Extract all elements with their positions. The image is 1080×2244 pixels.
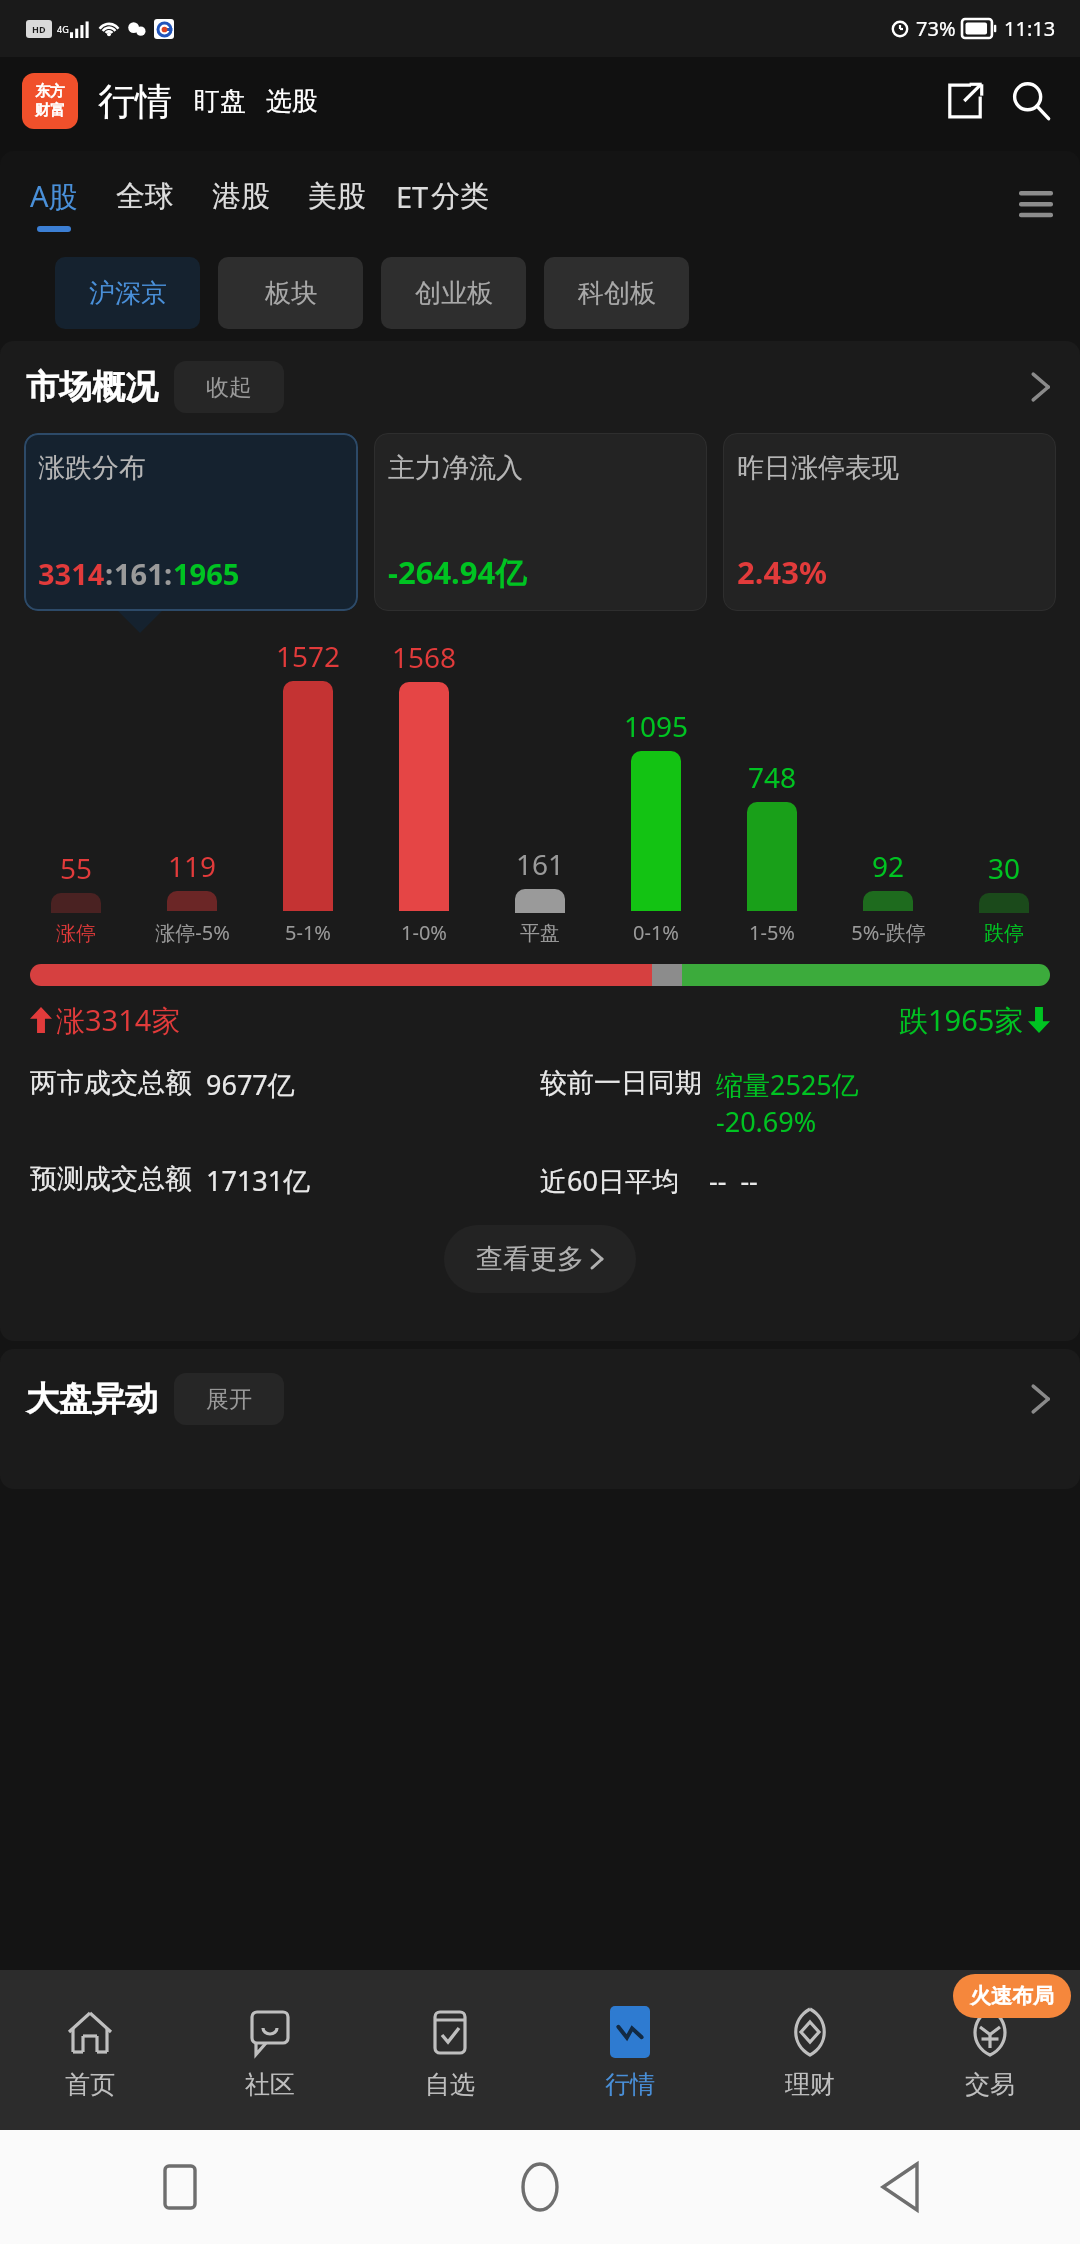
button[interactable]: 行情 xyxy=(98,78,172,125)
staticText: -- -- xyxy=(709,1162,758,1199)
staticText: 大盘异动 xyxy=(26,1378,158,1420)
staticText: 自选 xyxy=(425,2069,475,2100)
staticText: 预测成交总额 xyxy=(30,1162,192,1196)
button[interactable]: East Money logo xyxy=(22,73,78,129)
staticText: 1572 xyxy=(276,637,341,675)
staticText: 1095 xyxy=(624,707,689,745)
staticText: ET xyxy=(396,177,429,216)
staticText: 跌1965家 xyxy=(899,1000,1024,1040)
staticText: 社区 xyxy=(245,2069,295,2100)
button[interactable]: Home xyxy=(510,2157,570,2217)
staticText: 73% xyxy=(916,15,956,42)
staticText: 缩量2525亿 xyxy=(716,1066,859,1103)
staticText: 全球 xyxy=(116,178,174,215)
staticText: 沪深京 xyxy=(89,277,167,310)
button[interactable]: 社区 xyxy=(180,1970,360,2130)
staticText: HD xyxy=(32,23,46,35)
button[interactable]: 展开 xyxy=(174,1373,284,1425)
staticText: 展开 xyxy=(206,1385,252,1414)
staticText: 港股 xyxy=(212,178,270,215)
button[interactable]: 全球 xyxy=(116,151,174,257)
staticText: : xyxy=(164,554,173,593)
button[interactable]: A股 xyxy=(30,151,78,257)
button[interactable]: 选股 xyxy=(266,85,318,118)
button[interactable]: 沪深京 xyxy=(55,257,200,329)
staticText: -264.94亿 xyxy=(388,551,527,593)
staticText: 较前一日同期 xyxy=(540,1066,702,1100)
staticText: 理财 xyxy=(785,2069,835,2100)
staticText: 收起 xyxy=(206,373,252,402)
staticText: 涨3314家 xyxy=(56,1000,181,1040)
button[interactable]: 大盘异动 xyxy=(0,1349,1080,1449)
staticText: 涨停 xyxy=(56,921,96,946)
staticText: 东方 xyxy=(35,82,65,101)
staticText: 涨停-5% xyxy=(155,919,230,946)
button[interactable]: ET xyxy=(396,151,429,257)
staticText: 11:13 xyxy=(1004,15,1056,42)
button[interactable]: 涨跌分布 xyxy=(24,433,358,611)
button[interactable]: 收起 xyxy=(174,361,284,413)
staticText: 17131亿 xyxy=(206,1162,311,1199)
staticText: 行情 xyxy=(605,2069,655,2100)
staticText: 161 xyxy=(516,845,565,883)
staticText: 1965 xyxy=(173,554,240,593)
staticText: 板块 xyxy=(265,277,317,310)
staticText: 财富 xyxy=(35,101,65,120)
staticText: 4G xyxy=(57,23,69,35)
staticText: 跌停 xyxy=(984,921,1024,946)
staticText: 交易 xyxy=(965,2069,1015,2100)
staticText: 5-1% xyxy=(285,919,331,946)
button[interactable]: 交易 xyxy=(900,1970,1080,2130)
staticText: 主力净流入 xyxy=(388,451,523,485)
staticText: 5%-跌停 xyxy=(851,919,926,946)
button[interactable]: Share xyxy=(940,76,990,126)
button[interactable]: 板块 xyxy=(218,257,363,329)
staticText: 火速布局 xyxy=(970,1983,1054,2009)
staticText: A股 xyxy=(30,176,78,216)
staticText: 1-0% xyxy=(401,919,447,946)
staticText: 748 xyxy=(748,758,797,796)
button[interactable]: 分类 xyxy=(431,151,489,257)
staticText: 92 xyxy=(872,847,905,885)
button[interactable]: 盯盘 xyxy=(194,85,246,118)
staticText: 分类 xyxy=(431,178,489,215)
button[interactable]: Back xyxy=(870,2157,930,2217)
staticText: 30 xyxy=(988,849,1021,887)
staticText: 55 xyxy=(60,849,93,887)
staticText: 市场概况 xyxy=(26,366,158,408)
staticText: 119 xyxy=(168,847,217,885)
staticText: 0-1% xyxy=(633,919,679,946)
staticText: 首页 xyxy=(65,2069,115,2100)
button[interactable]: Menu xyxy=(1008,176,1064,232)
button[interactable]: 港股 xyxy=(212,151,270,257)
staticText: 美股 xyxy=(308,178,366,215)
staticText: 1-5% xyxy=(749,919,795,946)
staticText: 昨日涨停表现 xyxy=(737,451,899,485)
button[interactable]: 昨日涨停表现 xyxy=(723,433,1056,611)
button[interactable]: 行情 xyxy=(540,1970,720,2130)
button[interactable]: 查看更多 xyxy=(444,1225,636,1293)
staticText: 两市成交总额 xyxy=(30,1066,192,1100)
staticText: 选股 xyxy=(266,85,318,118)
staticText: 平盘 xyxy=(520,921,560,946)
button[interactable]: Search xyxy=(1004,74,1058,128)
button[interactable]: Recents xyxy=(150,2157,210,2217)
button[interactable]: 理财 xyxy=(720,1970,900,2130)
button[interactable]: 科创板 xyxy=(544,257,689,329)
button[interactable]: 主力净流入 xyxy=(374,433,707,611)
staticText: 3314 xyxy=(38,554,105,593)
button[interactable]: 市场概况 xyxy=(0,341,1080,433)
staticText: 161 xyxy=(114,554,164,593)
button[interactable]: 首页 xyxy=(0,1970,180,2130)
staticText: 科创板 xyxy=(578,277,656,310)
staticText: 1568 xyxy=(392,638,457,676)
button[interactable]: 美股 xyxy=(308,151,366,257)
button[interactable]: 创业板 xyxy=(381,257,526,329)
staticText: 涨跌分布 xyxy=(38,451,146,485)
staticText: -20.69% xyxy=(716,1103,817,1140)
staticText: : xyxy=(105,554,114,593)
button[interactable]: 自选 xyxy=(360,1970,540,2130)
staticText: 2.43% xyxy=(737,551,827,593)
staticText: 创业板 xyxy=(415,277,493,310)
staticText: 近60日平均 xyxy=(540,1162,679,1199)
